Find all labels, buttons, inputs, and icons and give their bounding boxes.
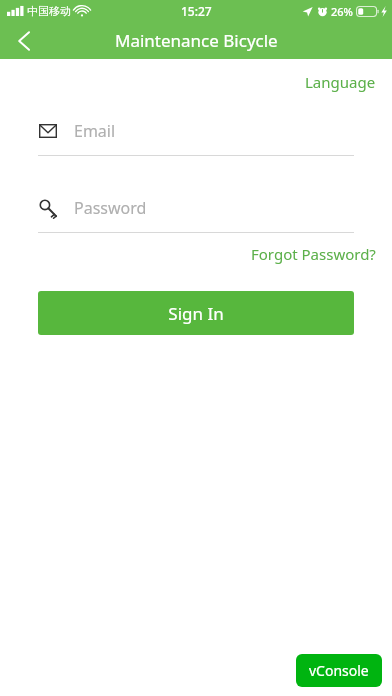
staticText: Forgot Password?: [251, 244, 376, 264]
button[interactable]: Email: [38, 117, 354, 156]
staticText: 15:27: [181, 3, 212, 19]
staticText: Sign In: [168, 302, 224, 325]
staticText: Password: [74, 197, 147, 219]
staticText: vConsole: [309, 661, 369, 680]
staticText: 26%: [331, 4, 353, 19]
staticText: 中国移动: [27, 4, 71, 18]
button[interactable]: Forgot Password?: [249, 241, 378, 267]
staticText: Maintenance Bicycle: [115, 29, 278, 52]
button[interactable]: Sign In: [38, 291, 354, 335]
button[interactable]: Language: [303, 69, 378, 95]
staticText: Email: [74, 120, 116, 142]
button[interactable]: Back: [0, 22, 48, 59]
button[interactable]: Password: [38, 194, 354, 233]
staticText: Language: [305, 72, 376, 92]
button[interactable]: vConsole: [296, 654, 382, 687]
